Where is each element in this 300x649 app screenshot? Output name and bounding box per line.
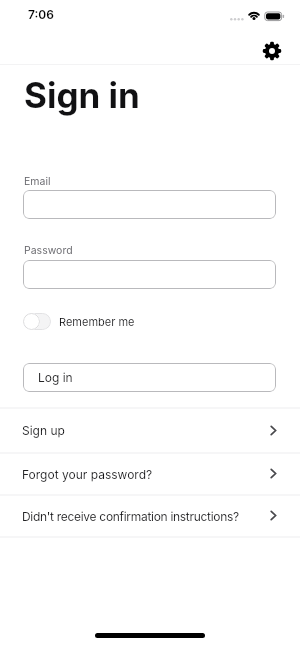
button[interactable] <box>23 260 276 289</box>
button[interactable]: Didn't receive confirmation instructions… <box>0 495 300 537</box>
staticText: Remember me <box>59 315 135 328</box>
staticText: Email <box>24 175 51 188</box>
staticText: Forgot your password? <box>22 467 153 482</box>
button[interactable]: Log in <box>23 363 276 392</box>
staticText: Password <box>24 244 73 257</box>
button[interactable] <box>254 33 290 69</box>
button[interactable]: Forgot your password? <box>0 453 300 495</box>
button[interactable]: Sign up <box>0 408 300 453</box>
staticText: Didn't receive confirmation instructions… <box>22 509 239 524</box>
button[interactable] <box>23 190 276 219</box>
staticText: Sign in <box>24 74 140 116</box>
staticText: Log in <box>38 370 73 385</box>
button[interactable] <box>23 313 51 330</box>
staticText: 7:06 <box>28 7 54 22</box>
staticText: Sign up <box>22 423 65 438</box>
